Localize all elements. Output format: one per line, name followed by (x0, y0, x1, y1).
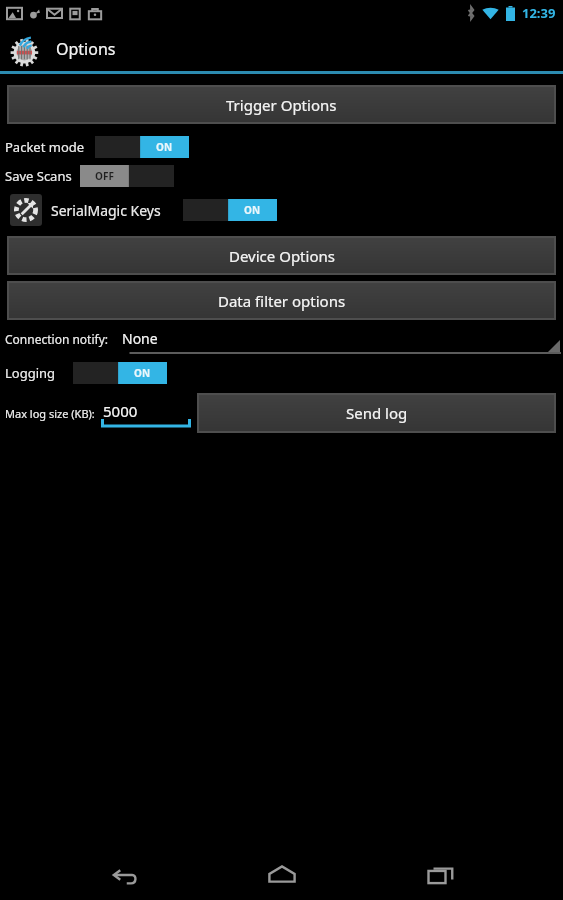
button[interactable]: Toggle on (95, 136, 189, 158)
staticText: Send log (346, 403, 408, 423)
button[interactable]: SerialMagic Keys (10, 194, 42, 226)
staticText: Save Scans (5, 167, 72, 185)
button[interactable]: Device Options (8, 237, 555, 274)
staticText: Packet mode (5, 138, 85, 156)
staticText: Connection notify: (5, 331, 108, 347)
staticText: None (122, 329, 158, 348)
button[interactable]: Data filter options (8, 282, 555, 319)
button[interactable]: Back (88, 852, 158, 896)
button[interactable]: 5000 (101, 396, 191, 430)
staticText: 5000 (103, 401, 138, 421)
staticText: ON (156, 140, 173, 154)
button[interactable]: Send log (198, 394, 555, 432)
button[interactable]: Trigger Options (8, 86, 555, 123)
staticText: SerialMagic Keys (51, 201, 161, 220)
staticText: Trigger Options (226, 95, 337, 115)
staticText: 12:39 (522, 4, 556, 22)
staticText: OFF (95, 169, 114, 183)
staticText: Data filter options (218, 291, 346, 311)
staticText: ON (134, 366, 151, 380)
staticText: Options (56, 38, 116, 60)
button[interactable]: Toggle on (183, 199, 277, 221)
staticText: ON (244, 203, 261, 217)
button[interactable]: Toggle off (80, 165, 174, 187)
button[interactable]: Connection notify: (0, 329, 563, 355)
staticText: Logging (5, 364, 56, 382)
staticText: Max log size (KB): (5, 406, 95, 421)
button[interactable]: Home (247, 852, 317, 896)
staticText: Device Options (229, 246, 335, 266)
button[interactable]: Recent apps (405, 852, 475, 896)
button[interactable]: Toggle on (73, 362, 167, 384)
